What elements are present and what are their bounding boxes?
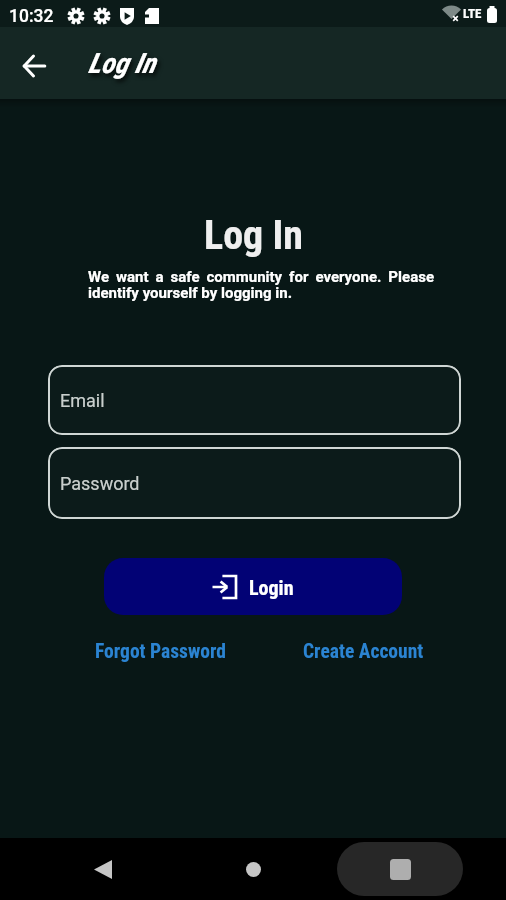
- staticText: LTE: [463, 6, 482, 21]
- button[interactable]: [11, 40, 58, 87]
- staticText: Password: [60, 473, 140, 494]
- staticText: Log In: [88, 47, 156, 80]
- staticText: We want a safe community for everyone. P…: [88, 268, 434, 301]
- button[interactable]: [230, 846, 276, 892]
- button[interactable]: Create Account: [303, 640, 424, 663]
- button[interactable]: Login: [104, 558, 402, 615]
- button[interactable]: Email: [48, 365, 461, 435]
- staticText: Email: [60, 390, 105, 411]
- staticText: 10:32: [9, 6, 54, 27]
- staticText: Login: [249, 576, 294, 599]
- button[interactable]: [80, 846, 126, 892]
- staticText: Log In: [204, 212, 303, 259]
- button[interactable]: Forgot Password: [95, 640, 226, 663]
- button[interactable]: Password: [48, 447, 461, 519]
- button[interactable]: [337, 842, 463, 896]
